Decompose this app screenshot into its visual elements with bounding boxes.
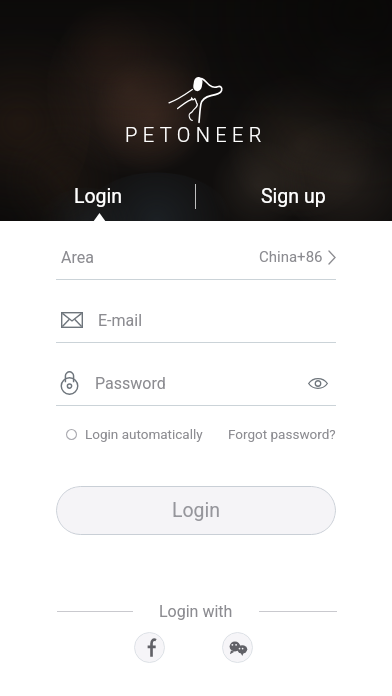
staticText: Sign up — [261, 185, 326, 208]
staticText: Password — [95, 374, 166, 393]
button[interactable]: Login — [56, 486, 336, 535]
button[interactable]: Forgot password? — [228, 426, 336, 442]
staticText: Login — [74, 185, 123, 208]
button[interactable]: E-mail — [56, 298, 336, 342]
staticText: China+86 — [259, 248, 323, 266]
staticText: Area — [61, 248, 94, 267]
staticText: Login with — [159, 602, 233, 621]
button[interactable]: Log in with Facebook — [134, 632, 165, 663]
staticText: Login — [172, 499, 221, 522]
button[interactable]: Area — [56, 235, 336, 279]
staticText: PETONEER — [125, 123, 267, 145]
button[interactable]: Log in with WeChat — [222, 632, 253, 663]
button[interactable]: Login automatically — [66, 426, 203, 442]
button[interactable]: Sign up — [254, 174, 332, 218]
button[interactable]: Login — [68, 174, 128, 218]
button[interactable]: Password — [56, 361, 336, 405]
staticText: Forgot password? — [228, 426, 336, 442]
staticText: Login automatically — [85, 426, 203, 442]
staticText: E-mail — [98, 311, 143, 330]
button[interactable]: Show password — [305, 370, 331, 396]
